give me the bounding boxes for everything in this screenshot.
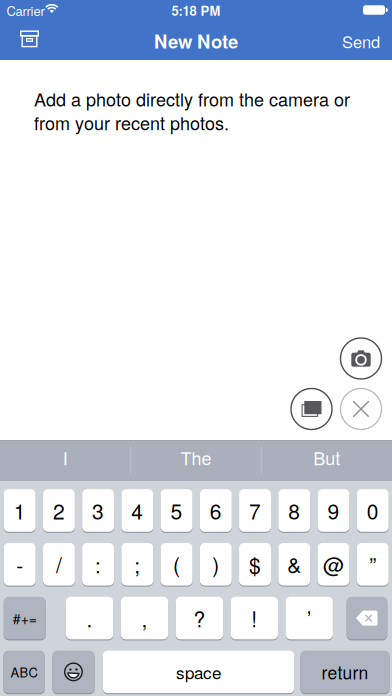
staticText: But: [313, 445, 340, 470]
button[interactable]: ?: [176, 596, 223, 640]
button[interactable]: Close: [340, 388, 381, 429]
staticText: 5:18 PM: [171, 1, 220, 20]
staticText: ABC: [11, 663, 38, 681]
staticText: .: [87, 603, 93, 633]
button[interactable]: #+=: [4, 596, 46, 640]
button[interactable]: Send: [342, 29, 380, 53]
staticText: 0: [367, 495, 379, 526]
button[interactable]: @: [317, 542, 349, 586]
staticText: 4: [131, 495, 143, 526]
button[interactable]: 9: [317, 489, 349, 532]
staticText: #+=: [13, 608, 37, 628]
button[interactable]: ,: [121, 596, 168, 640]
staticText: Add a photo directly from the camera or …: [34, 87, 350, 134]
staticText: 9: [327, 495, 339, 526]
button[interactable]: Notebooks: [19, 30, 40, 48]
staticText: @: [323, 549, 344, 579]
staticText: 2: [53, 495, 65, 526]
staticText: 3: [92, 495, 104, 526]
staticText: I: [63, 445, 68, 470]
button[interactable]: /: [43, 542, 75, 586]
staticText: New Note: [154, 28, 238, 54]
button[interactable]: ”: [357, 542, 389, 586]
staticText: ?: [193, 603, 205, 633]
button[interactable]: 1: [4, 489, 36, 532]
staticText: The: [180, 445, 211, 470]
button[interactable]: 5: [161, 489, 192, 532]
staticText: 7: [249, 495, 261, 526]
staticText: 8: [288, 495, 300, 526]
button[interactable]: The: [130, 440, 261, 481]
button[interactable]: .: [66, 596, 113, 640]
staticText: :: [95, 549, 101, 579]
staticText: ): [212, 549, 219, 579]
button[interactable]: 3: [82, 489, 114, 532]
button[interactable]: 0: [357, 489, 389, 532]
staticText: $: [249, 549, 261, 579]
staticText: !: [251, 603, 257, 633]
staticText: 6: [210, 495, 222, 526]
staticText: 5: [171, 495, 183, 526]
staticText: ”: [369, 549, 376, 579]
button[interactable]: 7: [239, 489, 271, 532]
button[interactable]: space: [103, 650, 294, 694]
button[interactable]: Emoji: [52, 650, 94, 694]
staticText: ’: [307, 603, 312, 633]
button[interactable]: :: [82, 542, 114, 586]
button[interactable]: I: [0, 440, 130, 481]
staticText: &: [287, 549, 301, 579]
staticText: ;: [134, 549, 140, 579]
button[interactable]: Take photo: [340, 338, 381, 379]
button[interactable]: ): [200, 542, 232, 586]
staticText: -: [16, 549, 23, 579]
staticText: ,: [141, 603, 147, 633]
staticText: Carrier: [6, 1, 44, 20]
button[interactable]: ;: [121, 542, 153, 586]
staticText: return: [321, 659, 368, 684]
button[interactable]: return: [300, 650, 390, 694]
button[interactable]: ABC: [3, 650, 45, 694]
button[interactable]: But: [261, 440, 392, 481]
button[interactable]: Delete: [347, 596, 387, 640]
button[interactable]: -: [4, 542, 36, 586]
button[interactable]: 2: [43, 489, 75, 532]
staticText: Send: [342, 29, 380, 53]
staticText: /: [56, 549, 62, 579]
staticText: 1: [14, 495, 26, 526]
staticText: space: [176, 660, 221, 684]
button[interactable]: ’: [285, 596, 333, 640]
button[interactable]: 6: [200, 489, 232, 532]
button[interactable]: &: [278, 542, 310, 586]
button[interactable]: 4: [121, 489, 153, 532]
button[interactable]: (: [161, 542, 192, 586]
button[interactable]: 8: [278, 489, 310, 532]
button[interactable]: Choose photo: [291, 388, 332, 429]
button[interactable]: $: [239, 542, 271, 586]
button[interactable]: !: [231, 596, 278, 640]
staticText: (: [173, 549, 180, 579]
